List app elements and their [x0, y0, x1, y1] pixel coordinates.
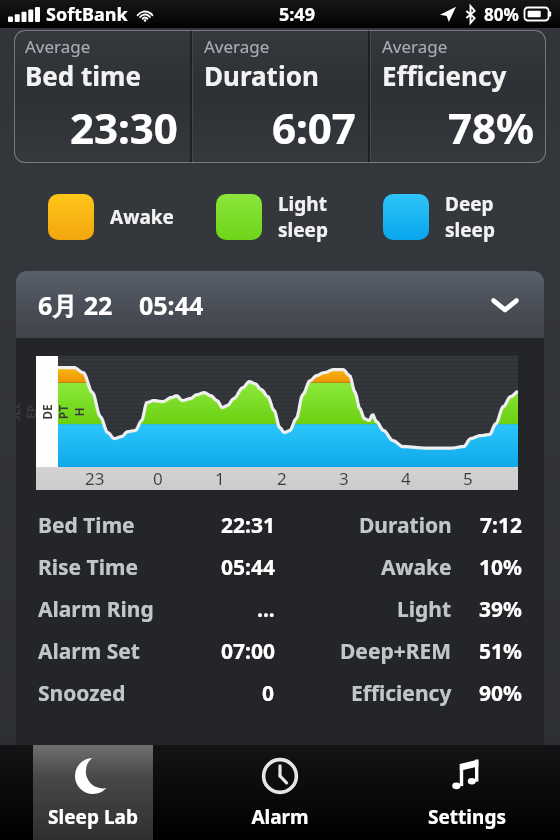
staticText: 2: [277, 467, 287, 490]
staticText: 23:30: [70, 99, 178, 156]
staticText: 22:31: [221, 511, 275, 540]
staticText: Efficiency: [351, 679, 452, 708]
staticText: 51%: [479, 637, 522, 666]
staticText: Average: [25, 35, 91, 58]
button[interactable]: Alarm tab: [220, 745, 340, 840]
staticText: Light: [278, 191, 327, 217]
button[interactable]: Awake: [48, 194, 216, 240]
staticText: Bed time: [25, 58, 141, 93]
button[interactable]: Deep: [383, 191, 550, 243]
staticText: SLEEP DEPTH: [16, 401, 87, 423]
staticText: 5: [463, 467, 473, 490]
button[interactable]: Rise Time: [38, 546, 522, 588]
staticText: Snoozed: [38, 679, 126, 708]
staticText: 6月 22: [38, 288, 113, 322]
staticText: 3: [339, 467, 349, 490]
button[interactable]: Snoozed: [38, 672, 522, 714]
staticText: 05:44: [221, 553, 275, 582]
staticText: sleep: [278, 217, 328, 243]
staticText: Sleep Lab: [48, 804, 138, 830]
button[interactable]: Collapse session details: [488, 288, 522, 322]
staticText: ...: [257, 595, 275, 624]
staticText: Deep+REM: [340, 637, 452, 666]
staticText: 10%: [479, 553, 522, 582]
button[interactable]: Sleep Lab tab: [33, 745, 153, 840]
staticText: sleep: [445, 217, 495, 243]
staticText: Awake: [110, 204, 174, 230]
staticText: 23: [85, 467, 105, 490]
staticText: Average: [382, 35, 448, 58]
staticText: Average: [204, 35, 270, 58]
staticText: 90%: [479, 679, 522, 708]
staticText: Settings: [428, 804, 506, 830]
staticText: 0: [153, 467, 163, 490]
staticText: Alarm Ring: [38, 595, 154, 624]
staticText: 5:49: [279, 2, 315, 27]
staticText: Duration: [204, 58, 319, 93]
staticText: Bed Time: [38, 511, 135, 540]
staticText: Efficiency: [382, 58, 507, 93]
staticText: Alarm Set: [38, 637, 140, 666]
staticText: Alarm: [251, 804, 309, 830]
staticText: Duration: [359, 511, 452, 540]
staticText: 4: [401, 467, 411, 490]
staticText: 0: [262, 679, 275, 708]
staticText: 39%: [479, 595, 522, 624]
staticText: 6:07: [272, 99, 356, 156]
staticText: Rise Time: [38, 553, 139, 582]
button[interactable]: Light: [216, 191, 383, 243]
staticText: 7:12: [480, 511, 522, 540]
staticText: Light: [397, 595, 452, 624]
button[interactable]: Average: [14, 30, 546, 163]
button[interactable]: Alarm Ring: [38, 588, 522, 630]
staticText: 80%: [484, 3, 519, 26]
staticText: 05:44: [139, 288, 204, 322]
staticText: 78%: [448, 99, 534, 156]
button[interactable]: Bed Time: [38, 504, 522, 546]
staticText: Awake: [381, 553, 452, 582]
staticText: 1: [215, 467, 225, 490]
staticText: Deep: [445, 191, 494, 217]
staticText: 07:00: [221, 637, 275, 666]
button[interactable]: Alarm Set: [38, 630, 522, 672]
button[interactable]: 6月 22: [16, 271, 544, 338]
button[interactable]: Settings tab: [407, 745, 527, 840]
staticText: SoftBank: [46, 2, 128, 27]
